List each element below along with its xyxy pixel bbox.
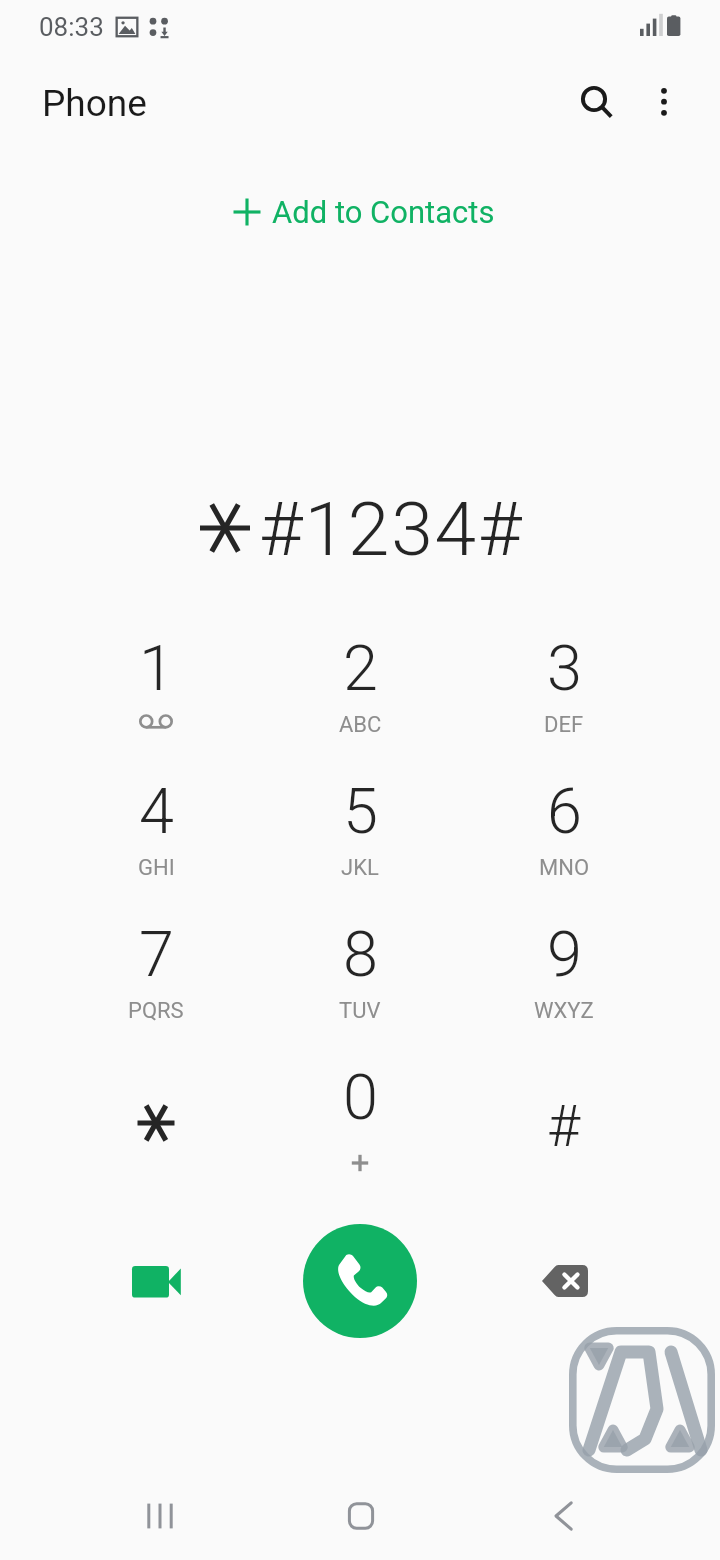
staticText: 0	[343, 1061, 378, 1135]
staticText: 08:33	[39, 12, 104, 42]
button[interactable]: Recents	[54, 1472, 258, 1560]
button[interactable]: 3	[462, 618, 666, 761]
button[interactable]	[54, 1047, 258, 1190]
staticText: WXYZ	[534, 998, 594, 1024]
staticText: Add to Contacts	[272, 194, 495, 230]
staticText: JKL	[341, 855, 379, 881]
button[interactable]: 2	[258, 618, 462, 761]
button[interactable]: Search	[556, 61, 632, 137]
staticText: #	[547, 1093, 581, 1160]
staticText: MNO	[539, 855, 590, 881]
button[interactable]: 6	[462, 761, 666, 904]
staticText: 1	[139, 632, 174, 706]
button[interactable]: 4	[54, 761, 258, 904]
staticText: ABC	[339, 712, 382, 738]
staticText: 5	[343, 775, 378, 849]
button[interactable]: Video call	[112, 1237, 200, 1325]
button[interactable]: 1	[54, 618, 258, 761]
button[interactable]: 7	[54, 904, 258, 1047]
button[interactable]: Back	[462, 1472, 666, 1560]
staticText: #1234#	[259, 485, 524, 573]
button[interactable]: Backspace	[520, 1237, 608, 1325]
staticText: 9	[547, 918, 582, 992]
button[interactable]: More options	[626, 61, 702, 137]
staticText: 8	[343, 918, 378, 992]
staticText: 6	[547, 775, 582, 849]
staticText: 4	[139, 775, 174, 849]
button[interactable]: 5	[258, 761, 462, 904]
staticText: PQRS	[128, 998, 184, 1024]
button[interactable]: 8	[258, 904, 462, 1047]
staticText: DEF	[544, 712, 584, 738]
staticText: 7	[139, 918, 174, 992]
button[interactable]: #	[462, 1047, 666, 1190]
button[interactable]: 0	[258, 1047, 462, 1190]
button[interactable]: Call	[303, 1224, 417, 1338]
staticText: 2	[343, 632, 378, 706]
staticText: 3	[547, 632, 582, 706]
staticText: GHI	[138, 855, 175, 881]
button[interactable]: Home	[258, 1472, 462, 1560]
staticText: Phone	[42, 82, 147, 125]
staticText: TUV	[339, 998, 381, 1024]
button[interactable]: Add to Contacts	[218, 183, 509, 241]
button[interactable]: 9	[462, 904, 666, 1047]
